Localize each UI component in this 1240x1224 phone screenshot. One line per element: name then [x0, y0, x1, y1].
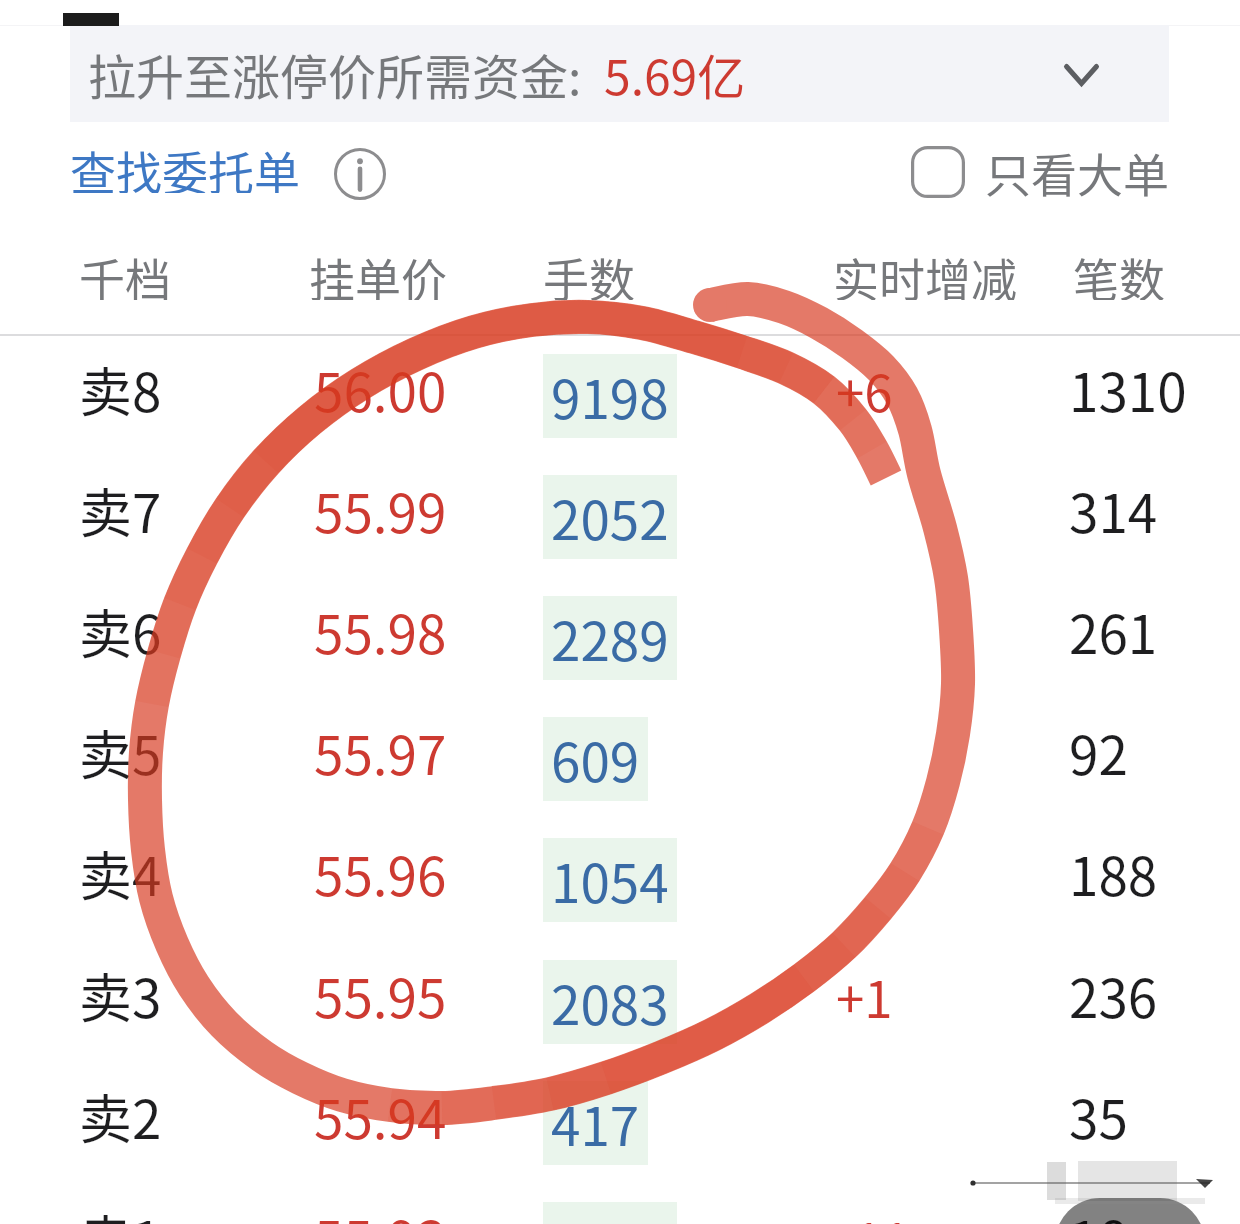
staticText: 417 — [551, 1085, 640, 1162]
staticText: 35 — [1069, 1078, 1128, 1155]
staticText: 卖5 — [79, 714, 162, 791]
staticText: 92 — [1069, 714, 1128, 791]
button[interactable]: 查找委托单 — [70, 137, 308, 193]
staticText: 笔数 — [1073, 244, 1165, 300]
staticText: 55.97 — [314, 714, 447, 791]
button[interactable]: 卖5 — [0, 690, 1240, 811]
staticText: 5.69亿 — [604, 39, 746, 109]
staticText: 只看大单 — [985, 139, 1169, 201]
staticText: 55.98 — [314, 593, 447, 670]
button[interactable]: 卖7 — [0, 448, 1240, 569]
staticText: 卖7 — [79, 472, 162, 549]
button[interactable]: 说明 — [330, 144, 390, 204]
staticText: 2289 — [551, 600, 669, 677]
staticText: 9198 — [551, 358, 669, 435]
staticText: 实时增减 — [833, 244, 1017, 300]
button[interactable]: 拉升至涨停价所需资金: — [70, 25, 1169, 122]
staticText: 188 — [1069, 835, 1158, 912]
staticText: 55.96 — [314, 835, 447, 912]
staticText: 1054 — [551, 842, 669, 919]
staticText: 236 — [1069, 957, 1158, 1034]
staticText: 手数 — [543, 244, 635, 300]
staticText: 卖6 — [79, 593, 162, 670]
staticText: +6 — [836, 353, 893, 427]
staticText: 56.00 — [314, 351, 447, 428]
staticText: -11 — [836, 1201, 911, 1224]
staticText: 55.93 — [314, 1199, 447, 1224]
staticText: 千档 — [79, 244, 171, 300]
staticText: 18 — [1069, 1199, 1128, 1224]
button[interactable]: 卖3 — [0, 933, 1240, 1054]
staticText: 卖1 — [79, 1199, 162, 1224]
button[interactable]: 卖2 — [0, 1054, 1240, 1175]
staticText: 55.95 — [314, 957, 447, 1034]
staticText: 55.94 — [314, 1078, 447, 1155]
staticText: 卖8 — [79, 351, 162, 428]
staticText: 卖3 — [79, 957, 162, 1034]
staticText: 55.99 — [314, 472, 447, 549]
staticText: 1310 — [1069, 351, 1187, 428]
staticText: 2083 — [551, 964, 669, 1041]
button[interactable]: 卖8 — [0, 327, 1240, 448]
button[interactable]: 卖4 — [0, 811, 1240, 932]
button[interactable]: 卖6 — [0, 569, 1240, 690]
button[interactable]: 卖1 — [0, 1175, 1240, 1224]
staticText: +1 — [836, 959, 893, 1033]
staticText: 261 — [1069, 593, 1158, 670]
staticText: 2052 — [551, 479, 669, 556]
staticText: 卖4 — [79, 835, 162, 912]
staticText: 查找委托单 — [70, 137, 300, 193]
staticText: 314 — [1069, 472, 1158, 549]
staticText: 拉升至涨停价所需资金: — [88, 39, 593, 109]
staticText: 挂单价 — [309, 244, 447, 300]
staticText: 卖2 — [79, 1078, 162, 1155]
other: 收起 — [1064, 25, 1240, 122]
button[interactable]: 只看大单 — [905, 142, 1175, 204]
staticText: 609 — [551, 721, 640, 798]
